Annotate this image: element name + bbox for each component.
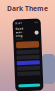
- staticText: Dark Theme: [7, 4, 48, 13]
- staticText: 9:41: [16, 21, 23, 24]
- staticText: Tuesday: [16, 38, 23, 39]
- staticText: Good morning: [16, 26, 24, 37]
